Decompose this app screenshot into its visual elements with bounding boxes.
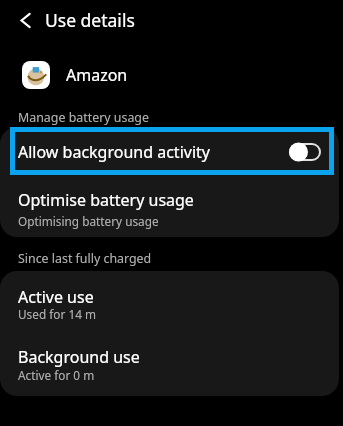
staticText: Allow background activity — [18, 141, 289, 163]
staticText: Optimising battery usage — [18, 213, 159, 229]
staticText: Amazon — [66, 64, 128, 86]
staticText: Manage battery usage — [18, 109, 149, 126]
button[interactable]: Optimise battery usage — [0, 177, 343, 236]
staticText: Background use — [18, 346, 140, 368]
button[interactable]: Active use — [0, 271, 343, 333]
staticText: Active use — [18, 286, 94, 308]
staticText: Active for 0 m — [18, 367, 95, 383]
staticText: Use details — [45, 8, 135, 32]
staticText: Since last fully charged — [18, 250, 152, 267]
staticText: Optimise battery usage — [18, 189, 194, 211]
button[interactable]: Back — [11, 6, 39, 34]
button[interactable]: Background use — [0, 333, 343, 395]
button[interactable]: Allow background activity — [0, 131, 343, 173]
staticText: Used for 14 m — [18, 306, 96, 322]
